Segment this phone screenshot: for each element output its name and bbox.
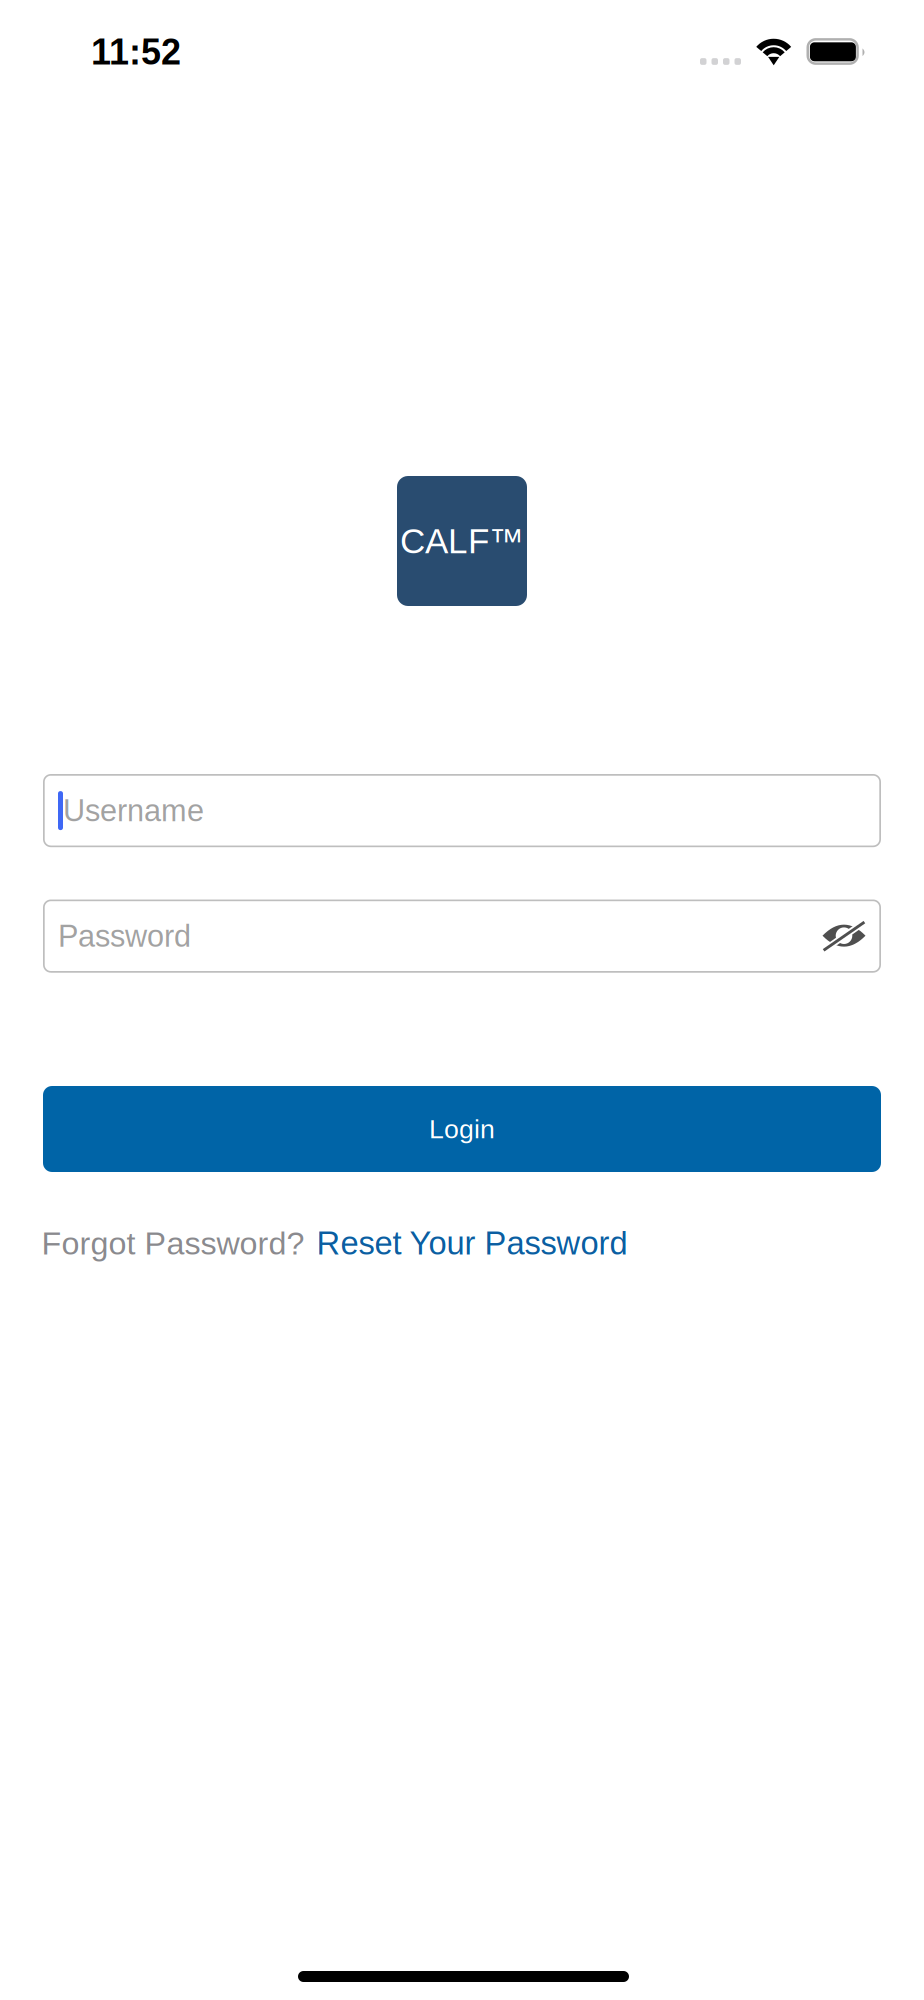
staticText: Login — [429, 1114, 495, 1144]
button[interactable]: Reset Your Password — [316, 1225, 627, 1261]
staticText: CALF™ — [400, 521, 524, 561]
button[interactable]: Username — [43, 774, 881, 847]
button[interactable]: Password — [43, 899, 807, 973]
button[interactable]: Login — [43, 1086, 881, 1172]
staticText: Forgot Password? — [41, 1225, 304, 1261]
staticText: 11:52 — [91, 32, 181, 72]
button[interactable]: Show password — [807, 899, 881, 973]
staticText: Password — [58, 919, 191, 953]
staticText: Reset Your Password — [316, 1225, 627, 1261]
staticText: Username — [63, 793, 204, 828]
